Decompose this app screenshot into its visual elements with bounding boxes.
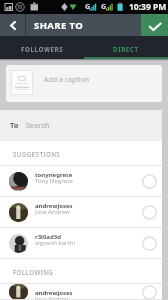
button[interactable]: DIRECT: [84, 37, 168, 60]
staticText: DIRECT: [113, 45, 139, 53]
button[interactable]: andrewjoses: [0, 284, 162, 300]
button[interactable]: r3l0ad3d: [0, 228, 162, 259]
staticText: To: [10, 120, 19, 130]
button[interactable]: Add a caption: [6, 65, 162, 102]
staticText: vignesh karthi: [35, 239, 75, 247]
staticText: 70: [17, 4, 23, 10]
staticText: FOLLOWERS: [21, 45, 64, 53]
staticText: Search: [26, 120, 50, 130]
staticText: 10:39 PM: [129, 1, 167, 13]
button[interactable]: Done: [141, 14, 168, 36]
staticText: G: [85, 2, 91, 12]
staticText: FOLLOWING: [13, 268, 54, 276]
button[interactable]: Back: [0, 14, 25, 36]
staticText: tonynegrete: [35, 171, 73, 179]
button[interactable]: andrewjoses: [0, 197, 162, 228]
button[interactable]: FOLLOWERS: [0, 37, 84, 60]
staticText: Tony Negrete: [35, 177, 73, 185]
button[interactable]: To: [0, 110, 162, 141]
button[interactable]: tonynegrete: [0, 166, 162, 197]
staticText: SUGGESTIONS: [13, 150, 61, 158]
staticText: Jose Andrew: [35, 208, 70, 216]
staticText: Jose Andrew: [35, 295, 70, 300]
staticText: G: [101, 2, 107, 12]
staticText: Add a caption: [44, 75, 90, 85]
staticText: andrewjoses: [35, 289, 73, 297]
staticText: SHARE TO: [34, 19, 84, 32]
staticText: r3l0ad3d: [35, 233, 61, 241]
staticText: andrewjoses: [35, 202, 73, 210]
